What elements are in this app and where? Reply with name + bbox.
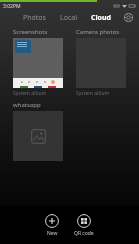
button[interactable]: QR code [71, 213, 97, 238]
button[interactable]: whatsapp [13, 101, 63, 161]
staticText: Photos [23, 13, 46, 23]
button[interactable]: Camera photos [76, 28, 126, 97]
other: New [45, 214, 59, 228]
staticText: Screenshots [13, 28, 48, 36]
button[interactable]: Settings [123, 12, 134, 23]
staticText: 3:02PM [3, 3, 21, 10]
other: QR code [77, 214, 91, 228]
staticText: New [47, 230, 58, 237]
staticText: Cloud [91, 13, 111, 23]
staticText: QR code [74, 230, 94, 237]
staticText: Camera photos [76, 28, 120, 36]
staticText: System album [76, 90, 110, 97]
staticText: System album [13, 90, 47, 97]
button[interactable]: Local [59, 11, 78, 25]
staticText: whatsapp [13, 101, 41, 109]
button[interactable]: Screenshots [13, 28, 63, 97]
staticText: Local [60, 13, 77, 23]
button[interactable]: New [42, 213, 62, 238]
button[interactable]: Photos [22, 11, 47, 25]
button[interactable]: Cloud [90, 11, 112, 25]
